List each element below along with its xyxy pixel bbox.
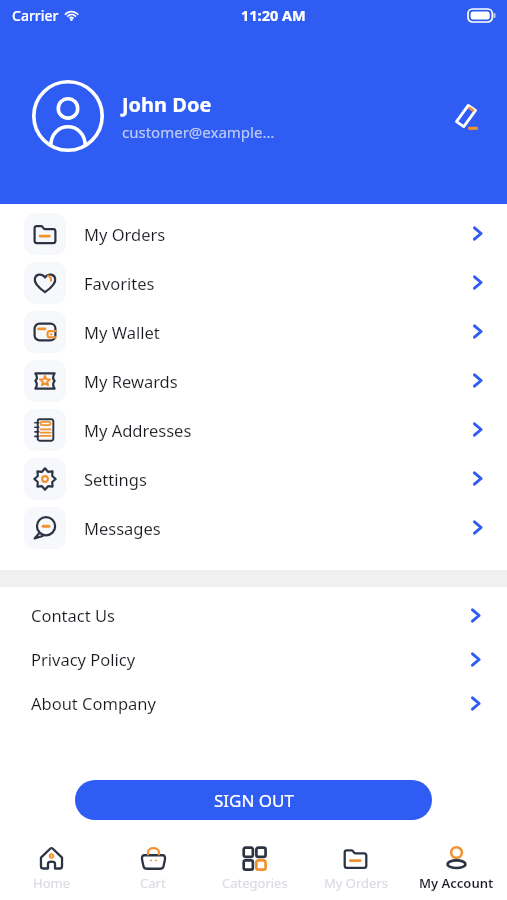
button[interactable]: My Orders [0,209,507,258]
staticText: Categories [222,874,288,892]
button[interactable]: Favorites [0,258,507,307]
staticText: Settings [84,468,147,490]
staticText: SIGN OUT [214,789,294,812]
staticText: Cart [140,874,166,892]
staticText: Favorites [84,272,155,294]
staticText: customer@example… [122,122,275,142]
staticText: Home [33,874,70,892]
staticText: My Orders [324,874,388,892]
staticText: My Account [419,874,494,892]
staticText: My Addresses [84,419,192,441]
staticText: 11:20 AM [241,5,306,25]
button[interactable]: SIGN OUT [75,780,432,820]
button[interactable]: About Company [0,681,507,725]
staticText: About Company [31,692,156,714]
button[interactable]: Edit profile [443,93,489,139]
button[interactable]: Cart [102,840,204,896]
button[interactable]: Categories [204,840,305,896]
staticText: Messages [84,517,161,539]
button[interactable]: Contact Us [0,593,507,637]
button[interactable]: My Addresses [0,405,507,454]
button[interactable]: Settings [0,454,507,503]
button[interactable]: My Rewards [0,356,507,405]
staticText: Privacy Policy [31,648,136,670]
button[interactable]: My Orders [305,840,406,896]
button[interactable]: My Wallet [0,307,507,356]
staticText: My Rewards [84,370,178,392]
button[interactable]: My Account [406,840,507,896]
staticText: Carrier [12,6,59,25]
button[interactable]: Privacy Policy [0,637,507,681]
staticText: John Doe [122,91,212,118]
staticText: My Wallet [84,321,160,343]
staticText: My Orders [84,223,166,245]
button[interactable]: Messages [0,503,507,552]
button[interactable]: Home [0,840,102,896]
staticText: Contact Us [31,604,115,626]
